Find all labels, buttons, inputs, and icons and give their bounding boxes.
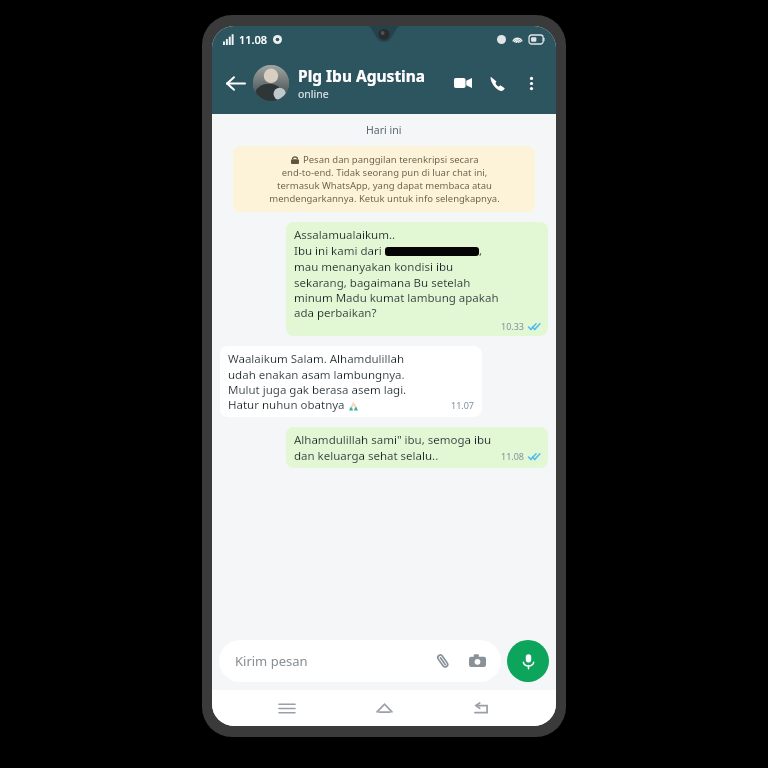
button[interactable]: Camera: [465, 649, 489, 673]
button[interactable]: Back: [459, 690, 503, 726]
button[interactable]: Plg Ibu Agustina: [253, 65, 446, 101]
staticText: Kirim pesan: [235, 652, 308, 670]
button[interactable]: Kirim pesan: [219, 640, 501, 682]
staticText: end-to-end. Tidak seorang pun di luar ch…: [269, 166, 500, 205]
staticText: Assalamualaikum..: [294, 227, 396, 243]
button[interactable]: More options: [514, 66, 548, 100]
staticText: Alhamdulillah sami" ibu, semoga ibu: [294, 432, 492, 448]
button[interactable]: Pesan dan panggilan terenkripsi secara: [233, 146, 535, 212]
staticText: Hatur nuhun obatnya: [228, 397, 348, 413]
button[interactable]: Voice call: [480, 66, 514, 100]
button[interactable]: Video call: [446, 66, 480, 100]
button[interactable]: Home: [362, 690, 406, 726]
button[interactable]: Back: [218, 66, 252, 100]
button[interactable]: Assalamualaikum..: [286, 222, 548, 336]
staticText: 11.07: [451, 399, 475, 411]
staticText: Waalaikum Salam. Alhamdulillah udah enak…: [228, 351, 407, 397]
button[interactable]: Recent apps: [265, 690, 309, 726]
staticText: 10.33: [501, 320, 525, 332]
button[interactable]: Attach: [431, 649, 455, 673]
staticText: mau menanyakan kondisi ibu sekarang, bag…: [294, 259, 499, 320]
staticText: ,: [479, 243, 483, 259]
staticText: 11.08: [501, 450, 525, 462]
staticText: dan keluarga sehat selalu..: [294, 448, 439, 464]
button[interactable]: Alhamdulillah sami" ibu, semoga ibu: [286, 427, 548, 468]
staticText: online: [298, 87, 329, 101]
staticText: Pesan dan panggilan terenkripsi secara: [303, 153, 479, 166]
staticText: 11.08: [239, 32, 268, 47]
staticText: Plg Ibu Agustina: [298, 65, 426, 86]
staticText: Hari ini: [366, 123, 402, 137]
button[interactable]: Record voice message: [507, 640, 549, 682]
staticText: Ibu ini kami dari: [294, 243, 385, 259]
button[interactable]: Waalaikum Salam. Alhamdulillah udah enak…: [220, 346, 482, 417]
